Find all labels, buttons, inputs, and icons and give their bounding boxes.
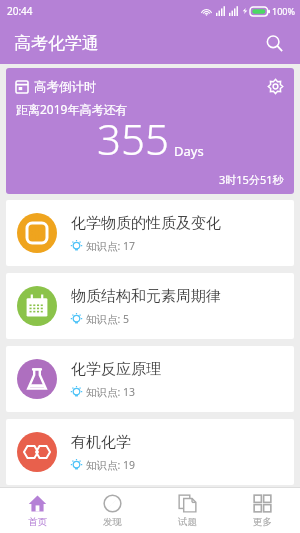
button[interactable]: 化学反应原理 (6, 346, 294, 412)
staticText: 化学物质的性质及变化 (71, 214, 221, 233)
staticText: 首页 (28, 516, 47, 528)
staticText: 更多 (253, 516, 272, 528)
button[interactable]: 化学物质的性质及变化 (6, 200, 294, 266)
staticText: Days (174, 142, 204, 160)
staticText: 知识点: 17 (86, 239, 136, 253)
staticText: 试题 (178, 516, 197, 528)
button[interactable]: 有机化学 (6, 419, 294, 485)
staticText: 知识点: 13 (86, 385, 136, 399)
staticText: 知识点: 19 (86, 458, 136, 472)
staticText: 高考倒计时 (34, 79, 97, 95)
button[interactable]: 高考倒计时 (6, 68, 294, 194)
staticText: 知识点: 5 (86, 312, 130, 326)
staticText: 高考化学通 (14, 33, 99, 54)
staticText: 3时15分51秒 (219, 172, 284, 187)
button[interactable]: 物质结构和元素周期律 (6, 273, 294, 339)
staticText: 100% (272, 5, 295, 17)
staticText: 距离2019年高考还有 (16, 101, 128, 117)
staticText: 化学反应原理 (71, 360, 161, 379)
staticText: 发现 (103, 516, 122, 528)
button[interactable]: 发现 (75, 488, 150, 533)
button[interactable]: 更多 (225, 488, 300, 533)
button[interactable]: Settings (263, 74, 287, 98)
button[interactable]: 首页 (0, 488, 75, 533)
button[interactable]: Search (258, 27, 290, 59)
staticText: 355 (97, 110, 169, 167)
staticText: 20:44 (7, 4, 33, 18)
button[interactable]: 试题 (150, 488, 225, 533)
staticText: 有机化学 (71, 433, 131, 452)
staticText: 物质结构和元素周期律 (71, 287, 221, 306)
